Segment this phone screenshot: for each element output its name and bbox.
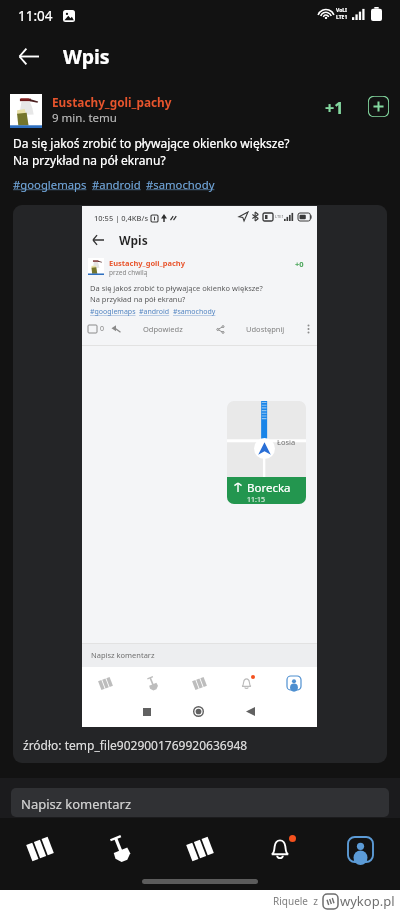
staticText: Na przykład na pół ekranu? xyxy=(13,152,166,168)
button[interactable]: 10:55 | 0,4KB/s xyxy=(13,205,387,763)
button[interactable]: Dig xyxy=(80,820,160,878)
staticText: Napisz komentarz xyxy=(21,795,132,813)
staticText: VoLI xyxy=(336,7,348,14)
staticText: 11:15 xyxy=(247,495,265,504)
button[interactable]: #samochody xyxy=(146,177,215,192)
staticText: +1 xyxy=(325,97,344,119)
staticText: Da się jakoś zrobić to pływające okienko… xyxy=(13,135,290,151)
staticText: LTE1 xyxy=(336,14,348,21)
staticText: #android xyxy=(139,307,170,317)
staticText: 9 min. temu xyxy=(52,110,117,126)
button[interactable]: Home xyxy=(0,820,80,878)
staticText: Borecka xyxy=(247,480,291,496)
staticText: Eustachy_goli_pachy xyxy=(52,94,172,110)
staticText: Odpowiedz xyxy=(143,324,183,334)
staticText: 11:04 xyxy=(18,7,53,25)
staticText: Riquele z xyxy=(273,894,318,908)
staticText: LTE1 xyxy=(275,214,284,219)
staticText: Da się jakoś zrobić to pływające okienko… xyxy=(90,283,263,293)
staticText: Eustachy_goli_pachy xyxy=(109,258,185,268)
staticText: źródło: temp_file9029001769920636948 xyxy=(23,737,248,753)
staticText: #googlemaps xyxy=(90,307,136,317)
staticText: 10:55 | 0,4KB/s xyxy=(94,213,149,223)
staticText: Udostępnij xyxy=(246,324,285,334)
button[interactable]: #android xyxy=(92,177,141,192)
button[interactable]: #googlemaps xyxy=(13,177,87,192)
staticText: Wpis xyxy=(119,232,148,248)
staticText: przed chwilą xyxy=(109,268,148,277)
button[interactable]: Back xyxy=(8,36,48,76)
staticText: 0 xyxy=(100,324,105,334)
button[interactable]: Napisz komentarz xyxy=(11,788,389,817)
staticText: Na przykład na pół ekranu? xyxy=(90,294,186,304)
button[interactable]: Microblog xyxy=(160,820,240,878)
staticText: Łosia xyxy=(277,437,296,447)
button[interactable]: Profile xyxy=(320,820,400,878)
button[interactable]: Notifications xyxy=(240,820,320,878)
button[interactable]: Upvote xyxy=(368,96,389,117)
staticText: +0 xyxy=(295,259,304,269)
staticText: #samochody xyxy=(173,307,216,317)
staticText: Wpis xyxy=(63,43,110,70)
staticText: wykop.pl xyxy=(340,892,395,910)
staticText: Napisz komentarz xyxy=(91,650,155,660)
